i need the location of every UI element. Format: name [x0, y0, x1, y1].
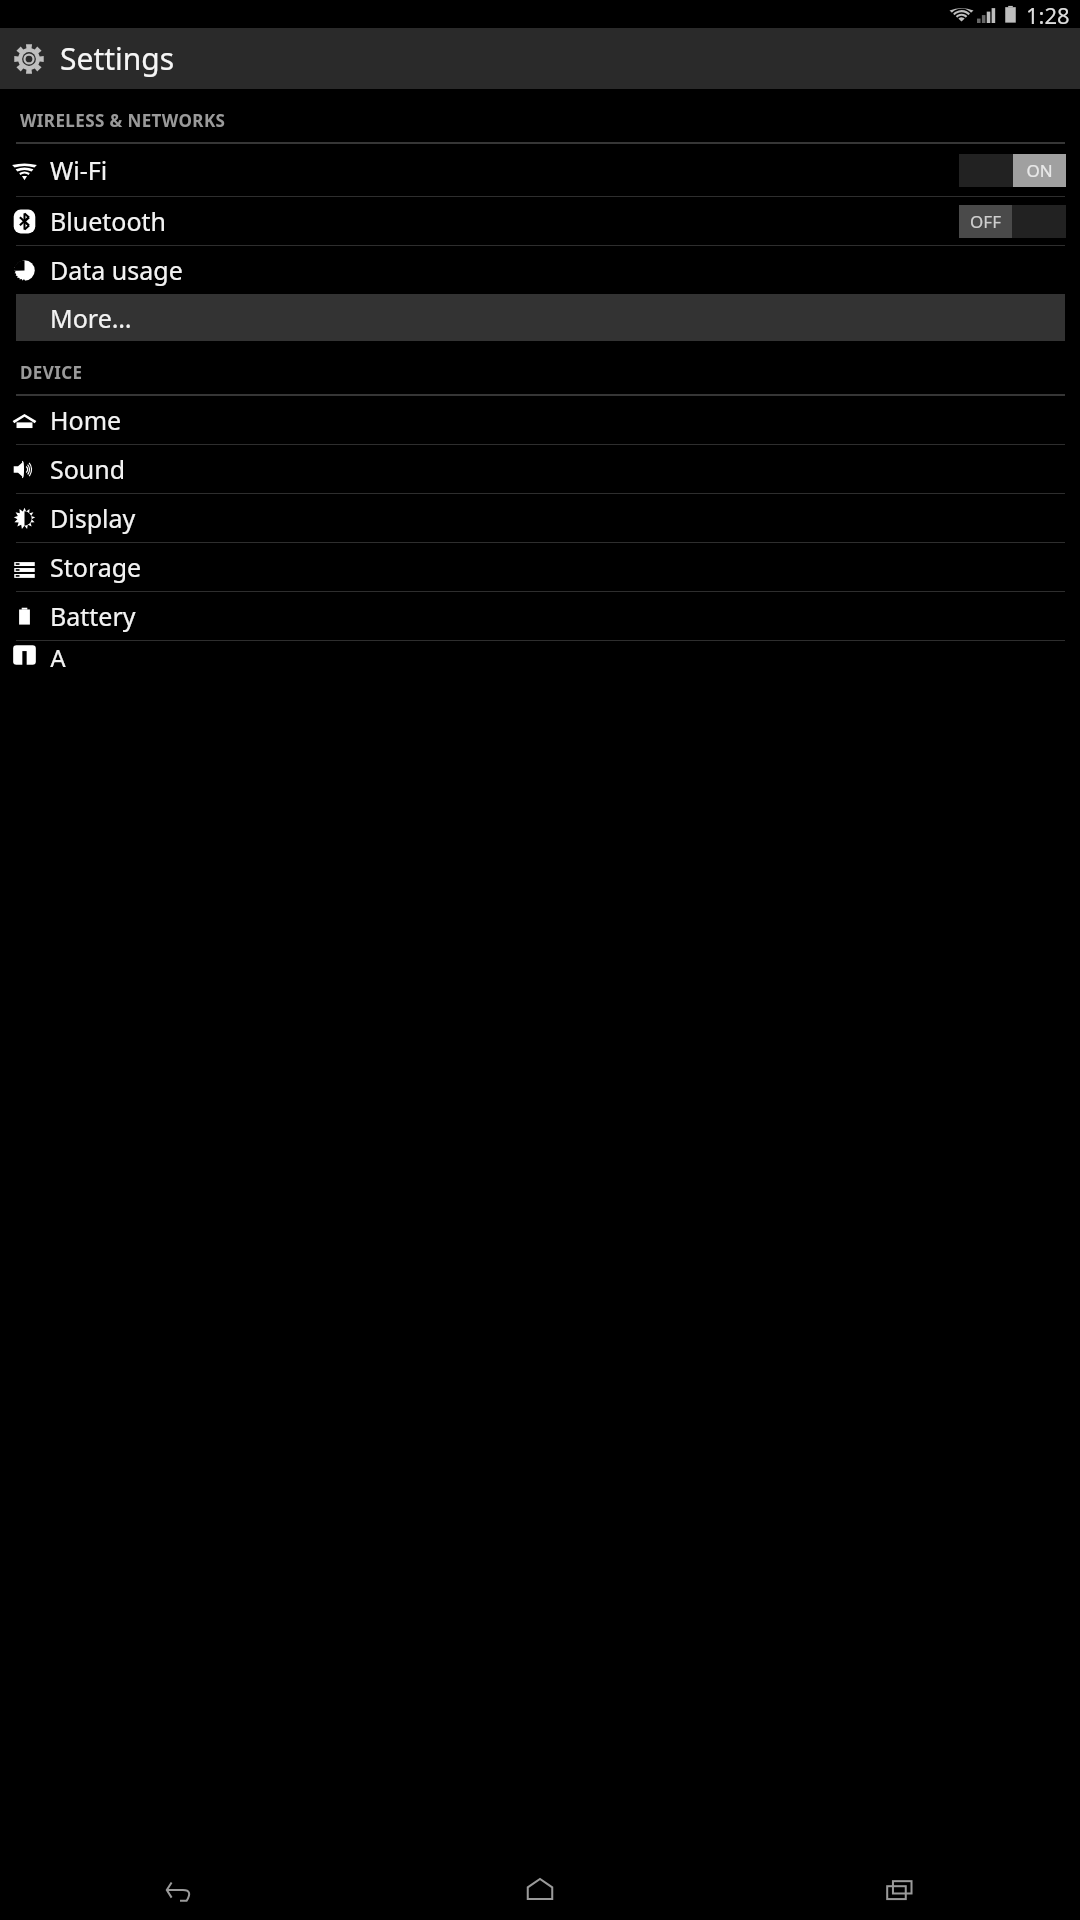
staticText: Wi-Fi: [50, 153, 959, 187]
staticText: Battery: [50, 599, 1080, 633]
staticText: A: [50, 641, 66, 667]
other: Display: [11, 505, 38, 532]
other: Data usage: [11, 257, 38, 284]
button[interactable]: Back: [0, 1858, 360, 1920]
button[interactable]: Settings icon: [0, 28, 1080, 89]
staticText: DEVICE: [20, 361, 83, 384]
button[interactable]: Data usage: [0, 246, 1080, 294]
other: Recent apps: [884, 1875, 916, 1903]
button[interactable]: Recent apps: [720, 1858, 1080, 1920]
staticText: Bluetooth: [50, 204, 959, 238]
button[interactable]: Display: [0, 494, 1080, 542]
staticText: ON: [1026, 159, 1053, 182]
staticText: More…: [50, 301, 1065, 335]
button[interactable]: Bluetooth: [0, 197, 1080, 245]
staticText: Display: [50, 501, 1080, 535]
other: Home: [523, 1875, 557, 1903]
button[interactable]: Home: [360, 1858, 720, 1920]
button[interactable]: Switch off: [959, 205, 1066, 238]
button[interactable]: Battery: [0, 592, 1080, 640]
other: Sound: [11, 456, 38, 483]
staticText: Data usage: [50, 253, 1080, 287]
other: Settings icon: [13, 43, 45, 75]
other: Home: [11, 407, 38, 434]
other: Wi-Fi: [11, 157, 38, 184]
button[interactable]: Switch on: [959, 154, 1066, 187]
staticText: Sound: [50, 452, 1080, 486]
staticText: Settings: [60, 38, 175, 79]
other: Bluetooth: [11, 208, 38, 235]
staticText: Storage: [50, 550, 1080, 584]
other: Battery: [11, 603, 38, 630]
button[interactable]: Sound: [0, 445, 1080, 493]
other: Back: [165, 1876, 195, 1903]
button[interactable]: Storage: [0, 543, 1080, 591]
button[interactable]: Apps: [0, 641, 1080, 667]
staticText: 1:28: [1026, 0, 1070, 28]
button[interactable]: More…: [16, 294, 1065, 341]
button[interactable]: Home: [0, 396, 1080, 444]
staticText: Home: [50, 403, 1080, 437]
other: Apps: [11, 641, 38, 655]
button[interactable]: Wi-Fi: [0, 144, 1080, 196]
other: Storage: [11, 554, 38, 581]
staticText: OFF: [970, 210, 1001, 233]
staticText: WIRELESS & NETWORKS: [20, 109, 226, 132]
